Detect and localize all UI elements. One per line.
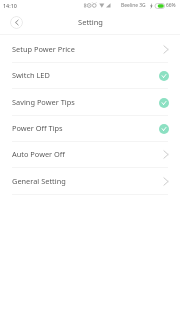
staticText: Setup Power Price bbox=[12, 44, 75, 54]
staticText: Setting bbox=[78, 17, 103, 27]
staticText: Power Off Tips bbox=[12, 123, 63, 133]
staticText: General Setting bbox=[12, 176, 66, 186]
staticText: Switch LED bbox=[12, 70, 50, 80]
staticText: Saving Power Tips bbox=[12, 97, 75, 107]
button[interactable]: Back bbox=[10, 16, 23, 29]
button[interactable]: Saving Power Tips bbox=[0, 90, 180, 116]
button[interactable]: Switch LED bbox=[0, 63, 180, 89]
staticText: Beeline 3G bbox=[121, 2, 146, 9]
button[interactable]: Auto Power Off bbox=[0, 142, 180, 168]
staticText: 66% bbox=[166, 2, 176, 9]
staticText: 14:10 bbox=[3, 2, 17, 9]
staticText: Auto Power Off bbox=[12, 149, 65, 159]
button[interactable]: Setup Power Price bbox=[0, 37, 180, 63]
button[interactable]: Power Off Tips bbox=[0, 116, 180, 142]
button[interactable]: General Setting bbox=[0, 169, 180, 195]
